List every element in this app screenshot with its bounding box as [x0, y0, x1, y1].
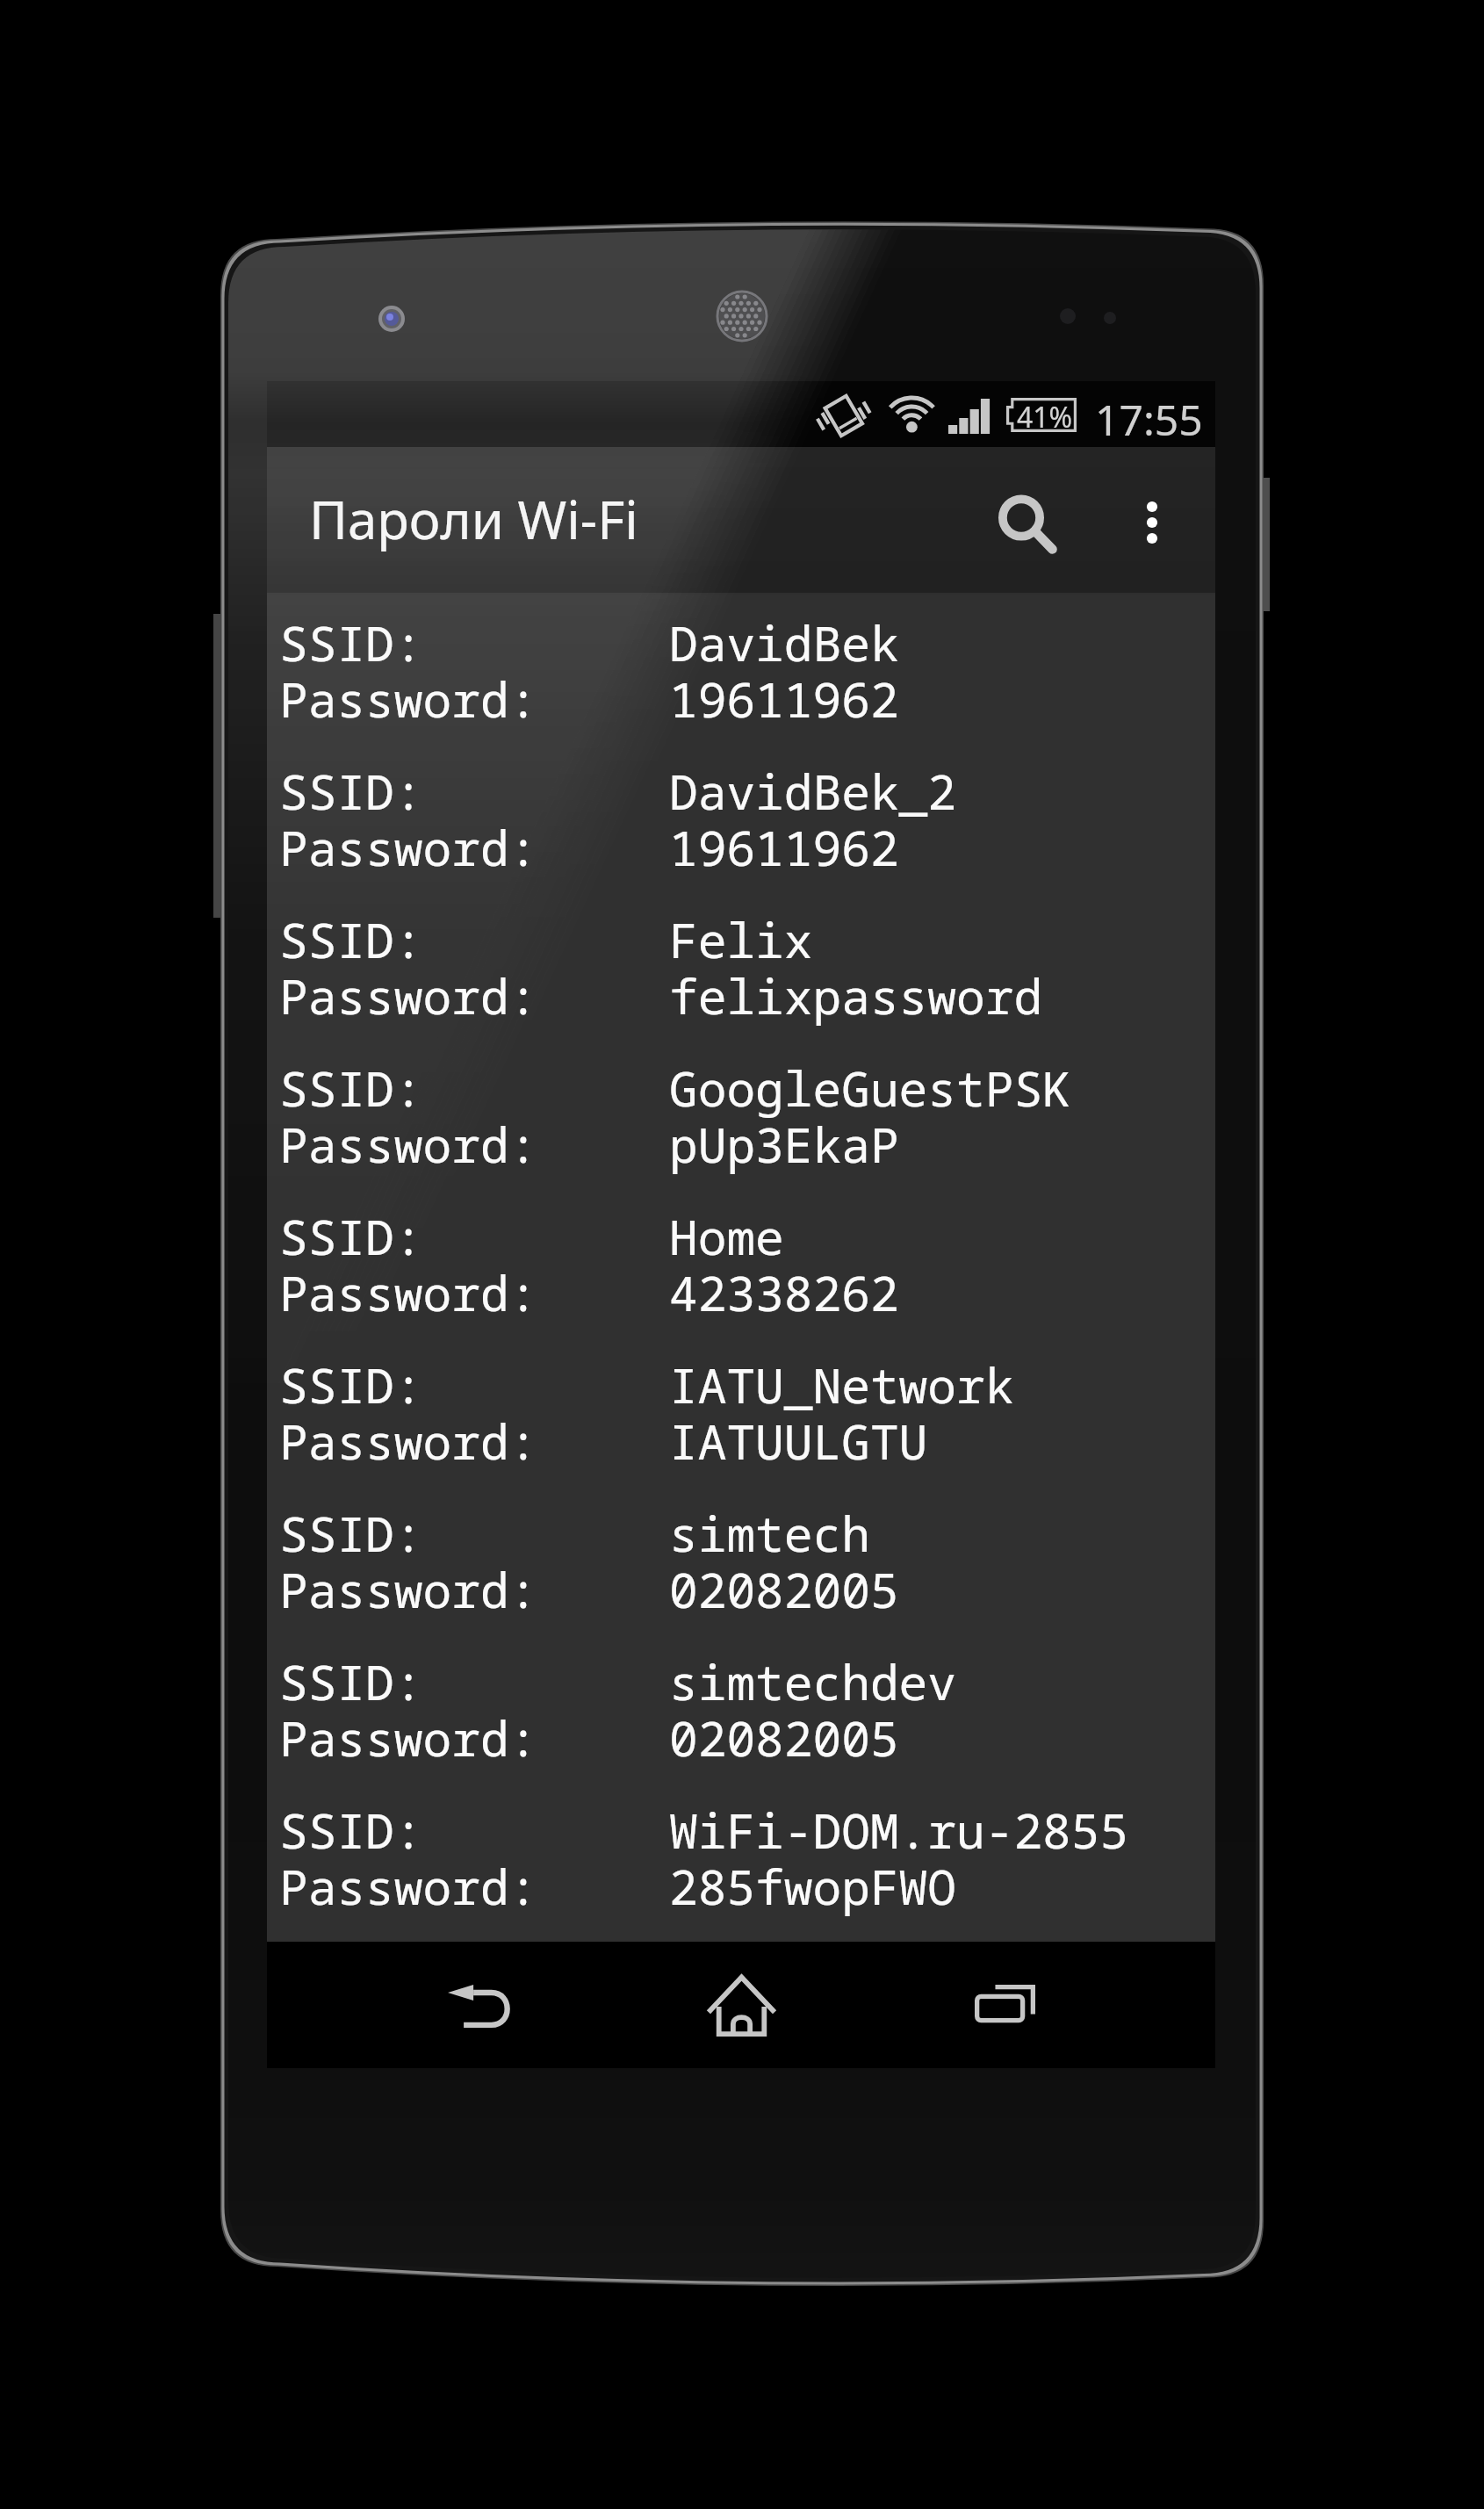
- staticText: GoogleGuestPSK: [669, 1056, 1071, 1121]
- staticText: pUp3EkaP: [669, 1112, 899, 1177]
- staticText: simtech: [669, 1501, 870, 1566]
- staticText: Password:: [279, 1854, 538, 1919]
- button[interactable]: SSID:: [267, 1352, 1215, 1501]
- staticText: 42338262: [669, 1260, 899, 1325]
- staticText: Password:: [279, 963, 538, 1028]
- staticText: felixpassword: [669, 963, 1043, 1028]
- button[interactable]: Recents: [873, 1942, 1136, 2068]
- staticText: SSID:: [279, 1056, 423, 1121]
- staticText: Пароли Wi-Fi: [309, 483, 638, 555]
- button[interactable]: SSID:: [267, 1649, 1215, 1798]
- staticText: Password:: [279, 1260, 538, 1325]
- staticText: 41%: [1017, 398, 1073, 432]
- staticText: WiFi-DOM.ru-2855: [669, 1798, 1129, 1863]
- staticText: SSID:: [279, 907, 423, 972]
- staticText: 17:55: [1095, 391, 1203, 448]
- staticText: SSID:: [279, 1204, 423, 1269]
- staticText: Password:: [279, 667, 538, 732]
- staticText: IATU_Network: [669, 1352, 1014, 1417]
- staticText: Password:: [279, 1705, 538, 1770]
- staticText: IATUULGTU: [669, 1409, 928, 1474]
- staticText: 285fwopFWO: [669, 1854, 957, 1919]
- staticText: 19611962: [669, 667, 899, 732]
- staticText: Password:: [279, 1557, 538, 1622]
- staticText: 02082005: [669, 1557, 899, 1622]
- button[interactable]: Home: [609, 1942, 873, 2068]
- staticText: Password:: [279, 815, 538, 880]
- button[interactable]: SSID:: [267, 1501, 1215, 1649]
- button[interactable]: SSID:: [267, 907, 1215, 1056]
- staticText: Password:: [279, 1409, 538, 1474]
- staticText: SSID:: [279, 1649, 423, 1714]
- staticText: SSID:: [279, 1352, 423, 1417]
- button[interactable]: Back: [347, 1942, 610, 2068]
- staticText: DavidBek: [669, 610, 899, 675]
- button[interactable]: SSID:: [267, 1204, 1215, 1352]
- staticText: SSID:: [279, 1798, 423, 1863]
- staticText: SSID:: [279, 759, 423, 824]
- button[interactable]: SSID:: [267, 759, 1215, 907]
- staticText: simtechdev: [669, 1649, 957, 1714]
- staticText: DavidBek_2: [669, 759, 957, 824]
- staticText: 19611962: [669, 815, 899, 880]
- button[interactable]: SSID:: [267, 1056, 1215, 1204]
- button[interactable]: Search: [958, 447, 1084, 595]
- staticText: SSID:: [279, 610, 423, 675]
- button[interactable]: SSID:: [267, 610, 1215, 759]
- button[interactable]: SSID:: [267, 1798, 1215, 1946]
- staticText: Home: [669, 1204, 784, 1269]
- button[interactable]: More options: [1103, 447, 1201, 595]
- staticText: Felix: [669, 907, 813, 972]
- staticText: Password:: [279, 1112, 538, 1177]
- staticText: SSID:: [279, 1501, 423, 1566]
- staticText: 02082005: [669, 1705, 899, 1770]
